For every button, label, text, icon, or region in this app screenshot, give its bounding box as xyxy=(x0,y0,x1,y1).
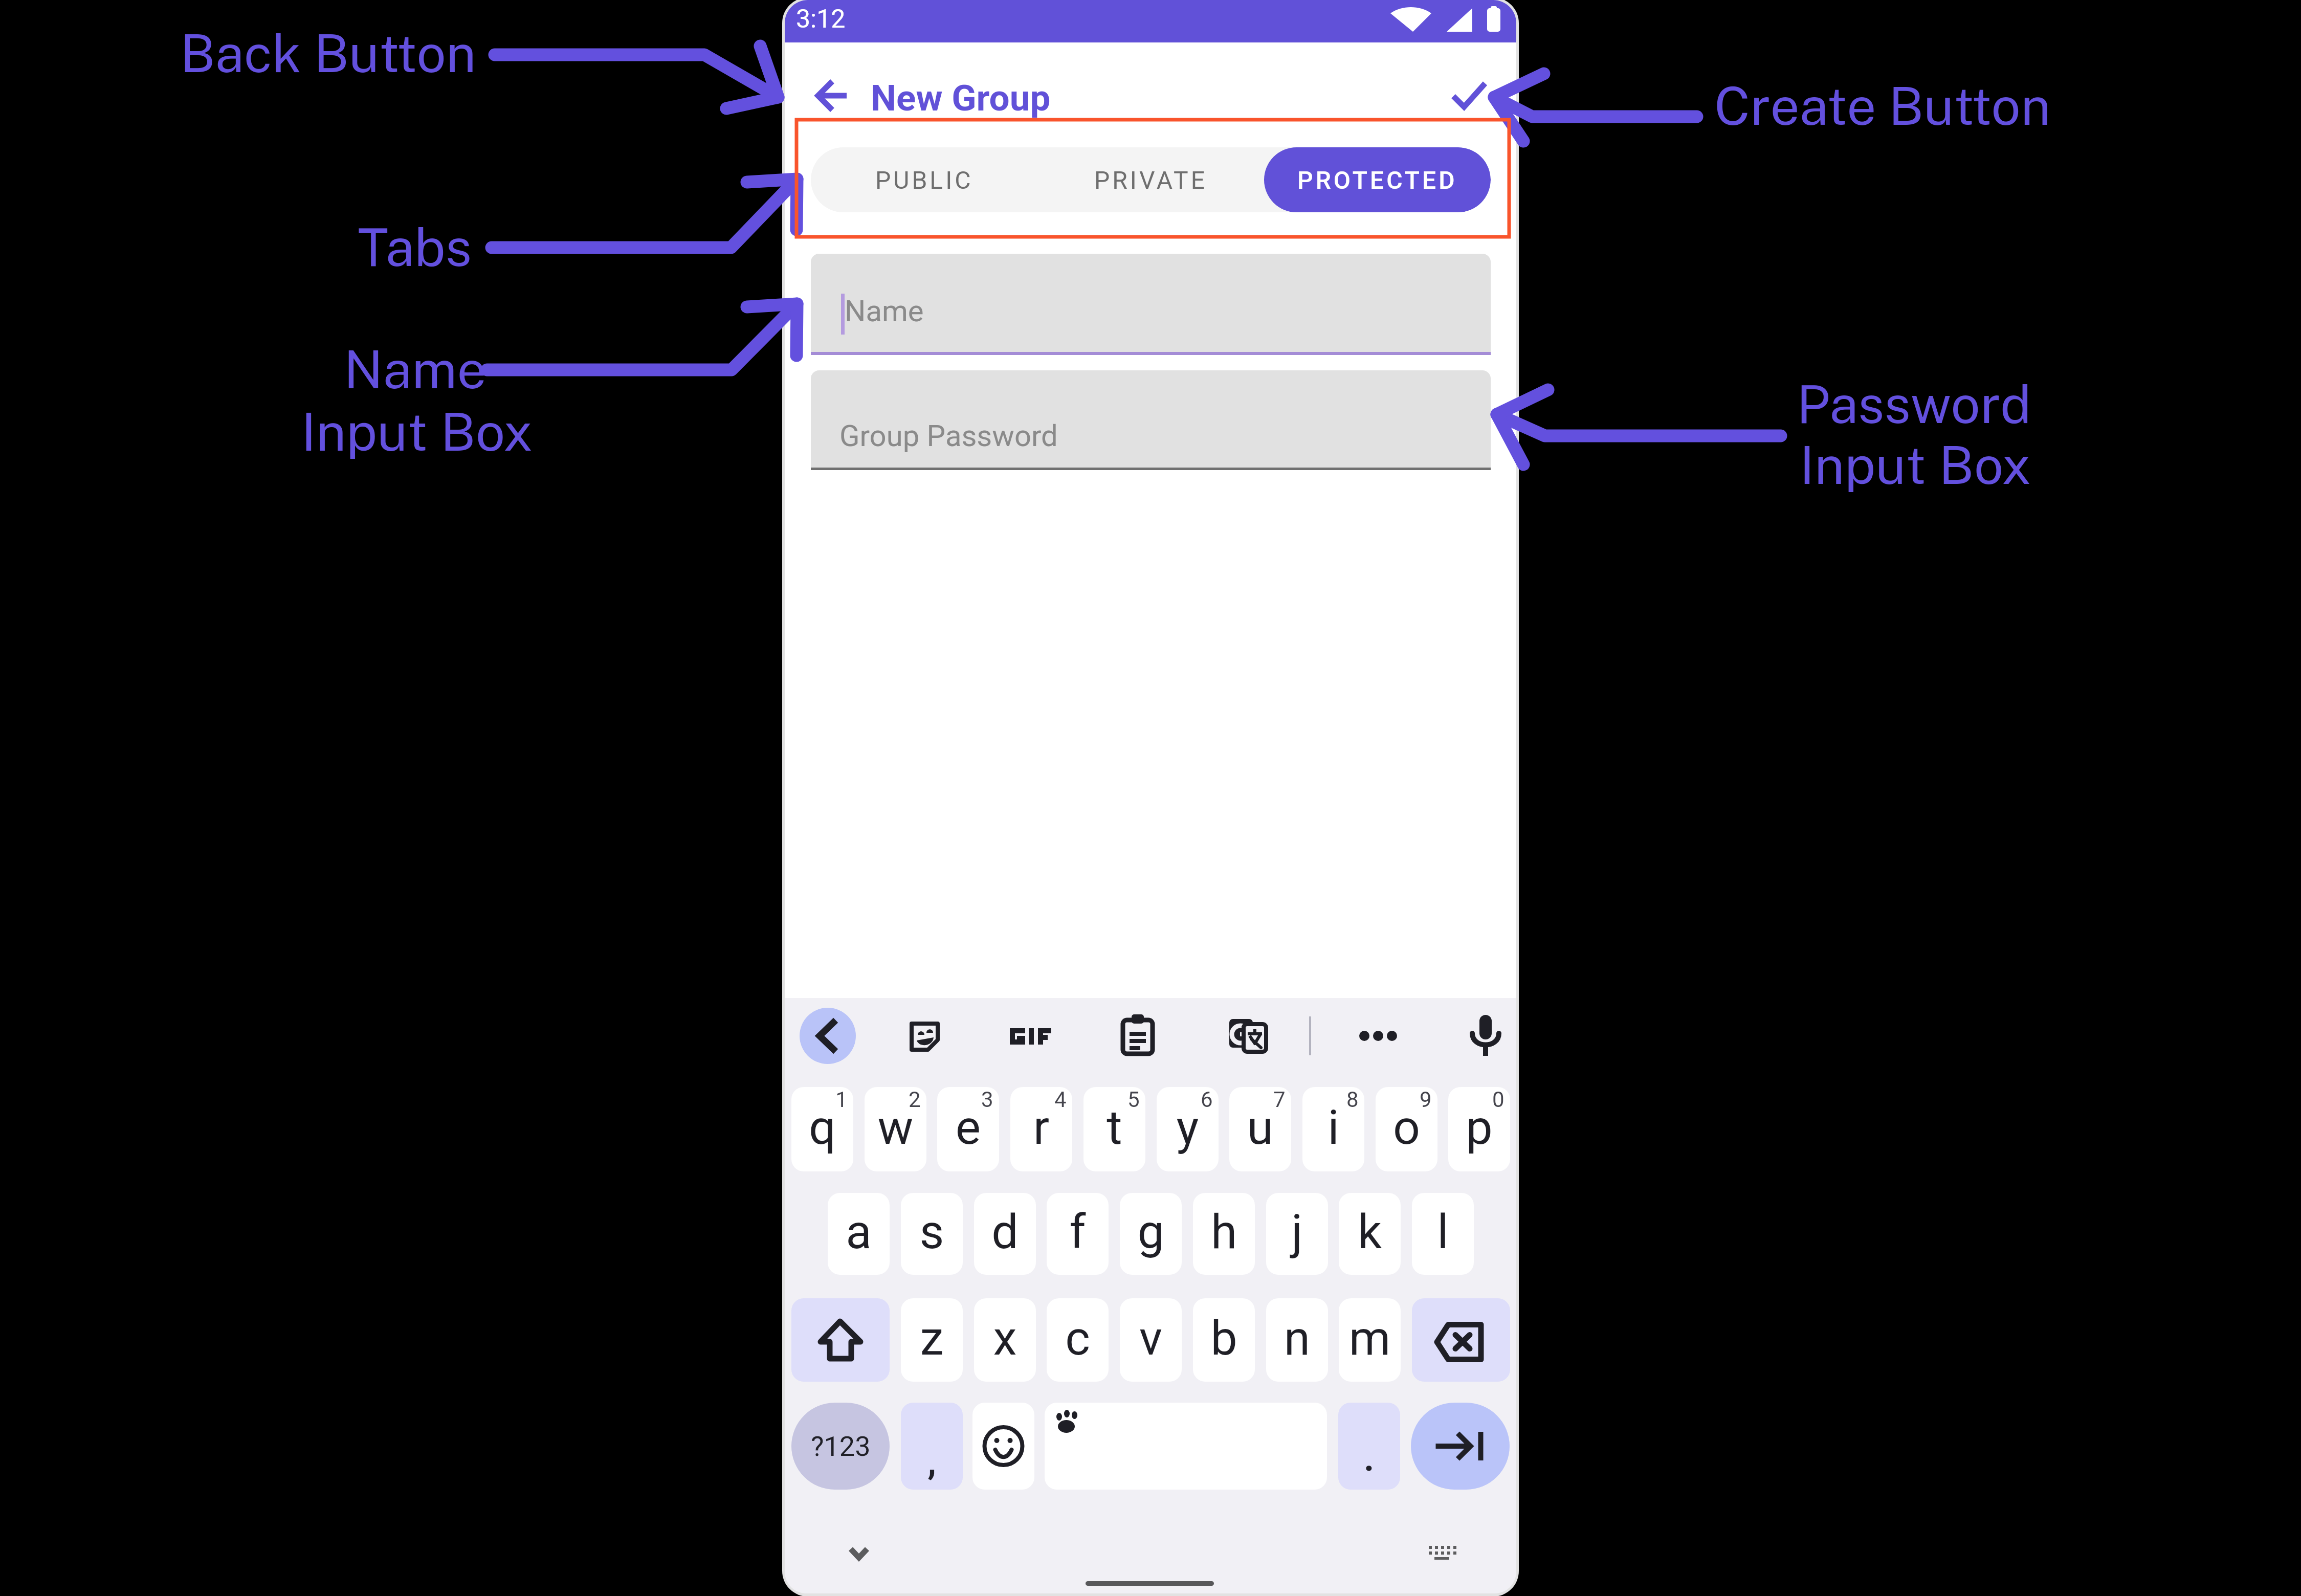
staticText: Name xyxy=(845,294,924,328)
button[interactable]: Backspace xyxy=(1412,1298,1510,1382)
staticText: k xyxy=(1339,1204,1401,1260)
button[interactable]: Space xyxy=(1045,1403,1327,1490)
staticText: q xyxy=(791,1100,853,1156)
staticText: Input Box xyxy=(1800,434,2031,496)
button[interactable]: t xyxy=(1083,1087,1145,1171)
staticText: PUBLIC xyxy=(875,166,973,194)
button[interactable]: PRIVATE xyxy=(1037,147,1264,212)
staticText: 3 xyxy=(981,1087,993,1112)
staticText: Back Button xyxy=(180,23,476,84)
button[interactable]: l xyxy=(1412,1193,1474,1275)
button[interactable]: o xyxy=(1376,1087,1437,1171)
button[interactable]: Clipboard xyxy=(1110,1008,1166,1064)
staticText: y xyxy=(1157,1100,1219,1156)
button[interactable]: i xyxy=(1302,1087,1364,1171)
staticText: m xyxy=(1339,1311,1401,1366)
button[interactable]: r xyxy=(1010,1087,1072,1171)
staticText: r xyxy=(1010,1100,1072,1156)
button[interactable]: PROTECTED xyxy=(1264,147,1491,212)
button[interactable]: k xyxy=(1339,1193,1401,1275)
staticText: Input Box xyxy=(301,401,533,462)
staticText: x xyxy=(974,1311,1036,1366)
staticText: a xyxy=(828,1204,890,1260)
button[interactable]: z xyxy=(901,1298,963,1382)
staticText: Group Password xyxy=(839,418,1058,453)
button[interactable]: s xyxy=(901,1193,963,1275)
button[interactable]: a xyxy=(828,1193,890,1275)
button[interactable]: Change keyboard xyxy=(1417,1527,1468,1578)
staticText: d xyxy=(974,1204,1036,1260)
button[interactable]: q xyxy=(791,1087,853,1171)
staticText: 2 xyxy=(909,1087,921,1112)
staticText: p xyxy=(1448,1100,1510,1156)
button[interactable]: Group Password xyxy=(811,370,1491,470)
button[interactable]: w xyxy=(865,1087,926,1171)
staticText: New Group xyxy=(871,77,1051,119)
button[interactable]: x xyxy=(974,1298,1036,1382)
button[interactable]: PUBLIC xyxy=(811,147,1037,212)
staticText: 5 xyxy=(1127,1087,1140,1112)
button[interactable]: . xyxy=(1338,1403,1400,1490)
staticText: i xyxy=(1302,1100,1364,1156)
staticText: 6 xyxy=(1201,1087,1213,1112)
button[interactable]: Hide keyboard xyxy=(833,1527,884,1579)
button[interactable]: Name xyxy=(811,254,1491,355)
staticText: z xyxy=(901,1311,963,1366)
staticText: Password xyxy=(1797,373,2031,435)
button[interactable]: m xyxy=(1339,1298,1401,1382)
button[interactable]: j xyxy=(1266,1193,1328,1275)
staticText: c xyxy=(1047,1311,1109,1366)
button[interactable]: Emoji xyxy=(972,1403,1034,1490)
button[interactable]: Voice input xyxy=(1457,1008,1513,1064)
button[interactable]: Collapse toolbar xyxy=(800,1008,856,1064)
staticText: 3:12 xyxy=(796,4,846,34)
staticText: . xyxy=(1364,1437,1375,1479)
button[interactable]: Back xyxy=(805,68,861,124)
button[interactable]: e xyxy=(937,1087,999,1171)
button[interactable]: y xyxy=(1157,1087,1219,1171)
staticText: t xyxy=(1083,1100,1145,1156)
button[interactable]: b xyxy=(1193,1298,1255,1382)
staticText: h xyxy=(1193,1204,1255,1260)
staticText: v xyxy=(1120,1311,1182,1366)
staticText: Tabs xyxy=(358,216,472,278)
button[interactable]: GIF xyxy=(1001,1008,1057,1064)
button[interactable]: Translate xyxy=(1217,1008,1273,1064)
button[interactable]: p xyxy=(1448,1087,1510,1171)
staticText: b xyxy=(1193,1311,1255,1366)
button[interactable]: ?123 xyxy=(791,1403,890,1490)
staticText: j xyxy=(1266,1204,1328,1260)
staticText: f xyxy=(1047,1204,1109,1260)
button[interactable]: d xyxy=(974,1193,1036,1275)
staticText: Name xyxy=(344,339,486,400)
staticText: 1 xyxy=(835,1087,848,1112)
staticText: PRIVATE xyxy=(1094,166,1207,194)
staticText: l xyxy=(1412,1204,1474,1260)
button[interactable]: h xyxy=(1193,1193,1255,1275)
staticText: PROTECTED xyxy=(1297,166,1457,194)
staticText: 4 xyxy=(1054,1087,1067,1112)
button[interactable]: g xyxy=(1120,1193,1182,1275)
staticText: 9 xyxy=(1420,1087,1432,1112)
button[interactable]: f xyxy=(1047,1193,1109,1275)
button[interactable]: , xyxy=(901,1403,963,1490)
button[interactable]: n xyxy=(1266,1298,1328,1382)
button[interactable]: v xyxy=(1120,1298,1182,1382)
staticText: e xyxy=(937,1100,999,1156)
button[interactable]: Enter xyxy=(1411,1403,1510,1490)
button[interactable]: c xyxy=(1047,1298,1109,1382)
staticText: 8 xyxy=(1346,1087,1359,1112)
button[interactable]: Create xyxy=(1441,67,1497,123)
button[interactable]: u xyxy=(1229,1087,1291,1171)
button[interactable]: Stickers xyxy=(896,1008,952,1064)
staticText: ?123 xyxy=(811,1430,871,1462)
staticText: g xyxy=(1120,1204,1182,1260)
staticText: o xyxy=(1376,1100,1437,1156)
staticText: 0 xyxy=(1492,1087,1504,1112)
button[interactable]: More options xyxy=(1350,1008,1406,1064)
staticText: 7 xyxy=(1273,1087,1286,1112)
staticText: s xyxy=(901,1204,963,1260)
staticText: Create Button xyxy=(1714,75,2051,137)
staticText: u xyxy=(1229,1100,1291,1156)
button[interactable]: Shift xyxy=(791,1298,890,1382)
